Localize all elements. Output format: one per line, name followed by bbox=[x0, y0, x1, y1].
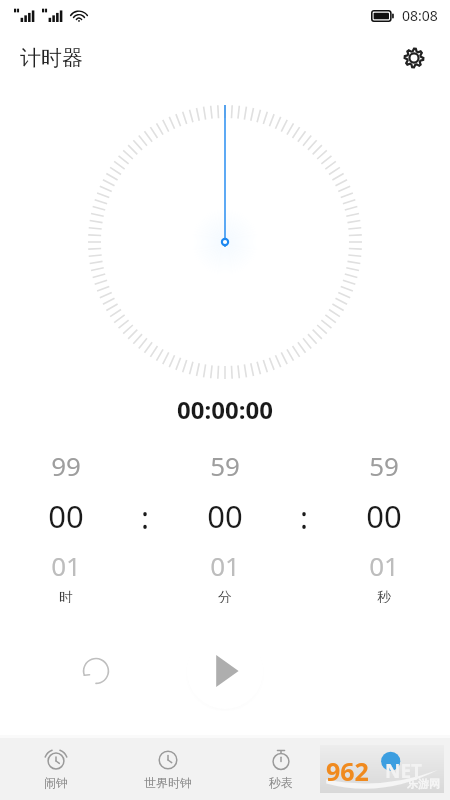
staticText: 99 bbox=[51, 448, 81, 483]
staticText: 世界时钟 bbox=[144, 775, 192, 790]
staticText: 59 bbox=[210, 448, 240, 483]
staticText: 00 bbox=[366, 495, 402, 537]
staticText: 01 bbox=[51, 548, 81, 583]
staticText: 闹钟 bbox=[44, 775, 68, 790]
button[interactable]: Settings bbox=[392, 36, 436, 80]
staticText: 时 bbox=[59, 589, 73, 603]
staticText: 00 bbox=[207, 495, 243, 537]
button[interactable]: 59 bbox=[158, 448, 291, 603]
button[interactable]: Reset bbox=[72, 647, 120, 695]
button[interactable]: 世界时钟 bbox=[112, 738, 224, 800]
button[interactable]: Start bbox=[185, 631, 265, 711]
staticText: 00 bbox=[48, 495, 84, 537]
button[interactable]: 59 bbox=[317, 448, 450, 603]
staticText: 乐游网 bbox=[407, 777, 440, 791]
staticText: 计时器 bbox=[20, 45, 83, 71]
staticText: 秒表 bbox=[269, 775, 293, 790]
staticText: : bbox=[300, 497, 309, 538]
staticText: 秒 bbox=[377, 589, 391, 603]
button[interactable]: 99 bbox=[0, 448, 132, 603]
staticText: NET bbox=[385, 758, 423, 784]
staticText: 01 bbox=[369, 548, 399, 583]
staticText: : bbox=[141, 497, 150, 538]
staticText: 59 bbox=[369, 448, 399, 483]
staticText: 分 bbox=[218, 589, 232, 603]
staticText: 01 bbox=[210, 548, 240, 583]
button[interactable]: 计时器 bbox=[337, 738, 450, 800]
staticText: 计时器 bbox=[376, 775, 412, 790]
staticText: 00:00:00 bbox=[177, 393, 273, 426]
staticText: 962 bbox=[326, 754, 369, 788]
button[interactable]: 闹钟 bbox=[0, 738, 112, 800]
staticText: 08:08 bbox=[402, 6, 438, 25]
button[interactable]: 秒表 bbox=[224, 738, 337, 800]
